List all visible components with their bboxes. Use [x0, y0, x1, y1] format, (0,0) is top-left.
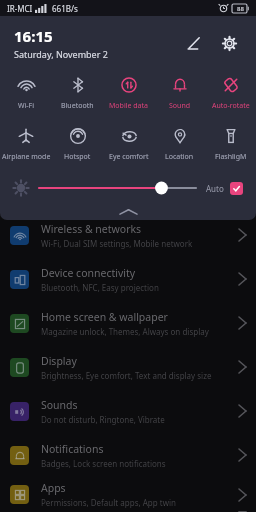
staticText: 661B/s	[52, 3, 78, 14]
button[interactable]: Location	[154, 123, 205, 164]
button[interactable]: Sounds	[0, 389, 256, 433]
staticText: Saturday, November 2	[14, 48, 108, 60]
button[interactable]: Collapse panel	[0, 206, 256, 218]
button[interactable]: Hotspot	[52, 123, 103, 164]
staticText: Home screen & wallpaper	[41, 310, 168, 324]
staticText: Mobile data	[109, 101, 148, 111]
staticText: Sound	[169, 101, 191, 111]
button[interactable]: Edit	[178, 28, 208, 58]
staticText: Bluetooth, NFC, Easy projection	[41, 282, 159, 293]
staticText: FlashligM	[215, 152, 247, 162]
staticText: Permissions, Default apps, App twin	[41, 497, 176, 508]
staticText: Apps	[41, 481, 66, 495]
button[interactable]: FlashligM	[205, 123, 256, 164]
staticText: Brightness, Eye comfort, Text and displa…	[41, 370, 212, 381]
staticText: Eye comfort	[109, 152, 149, 162]
button[interactable]: Eye comfort	[103, 123, 154, 164]
staticText: Auto	[206, 183, 224, 194]
button[interactable]: Apps	[0, 477, 256, 512]
staticText: Device connectivity	[41, 266, 136, 280]
staticText: 88	[237, 5, 244, 13]
button[interactable]: Home screen & wallpaper	[0, 301, 256, 345]
button[interactable]: Settings	[214, 28, 244, 58]
button[interactable]: Wi-Fi	[0, 72, 52, 113]
staticText: 16:15	[14, 26, 53, 46]
staticText: Magazine unlock, Themes, Always on displ…	[41, 326, 209, 337]
staticText: Display	[41, 354, 77, 368]
button[interactable]: Device connectivity	[0, 257, 256, 301]
staticText: Bluetooth	[61, 101, 94, 111]
staticText: Wi-Fi	[18, 101, 35, 111]
button[interactable]: Notifications	[0, 433, 256, 477]
staticText: Badges, Lock screen notifications	[41, 458, 166, 469]
button[interactable]: Brightness	[39, 178, 196, 198]
staticText: Do not disturb, Ringtone, Vibrate	[41, 414, 165, 425]
staticText: Airplane mode	[2, 152, 51, 162]
staticText: IR-MCI	[7, 3, 33, 14]
button[interactable]: Airplane mode	[0, 123, 52, 164]
staticText: Location	[165, 152, 194, 162]
button[interactable]: Bluetooth	[52, 72, 103, 113]
staticText: Auto-rotate	[212, 101, 250, 111]
button[interactable]: Wireless & networks	[0, 213, 256, 257]
staticText: Wi-Fi, Dual SIM settings, Mobile network	[41, 238, 193, 249]
button[interactable]: Sound	[154, 72, 205, 113]
button[interactable]: Display	[0, 345, 256, 389]
staticText: Hotspot	[64, 152, 91, 162]
staticText: Wireless & networks	[41, 222, 142, 236]
staticText: Sounds	[41, 398, 78, 412]
button[interactable]: Auto-rotate	[205, 72, 256, 113]
button[interactable]: Auto brightness	[230, 182, 243, 195]
button[interactable]: Mobile data	[103, 72, 154, 113]
staticText: Notifications	[41, 442, 104, 456]
